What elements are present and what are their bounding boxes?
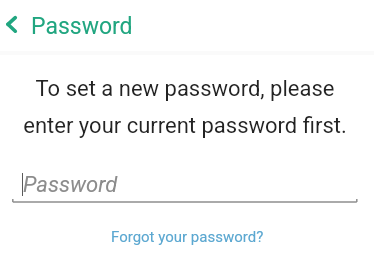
staticText: Password	[31, 13, 133, 40]
staticText: To set a new password, please enter your…	[0, 76, 372, 138]
staticText: Password	[23, 172, 118, 198]
button[interactable]: Current password	[0, 160, 374, 208]
button[interactable]: Forgot your password?	[105, 226, 270, 248]
button[interactable]: Back	[0, 9, 32, 41]
